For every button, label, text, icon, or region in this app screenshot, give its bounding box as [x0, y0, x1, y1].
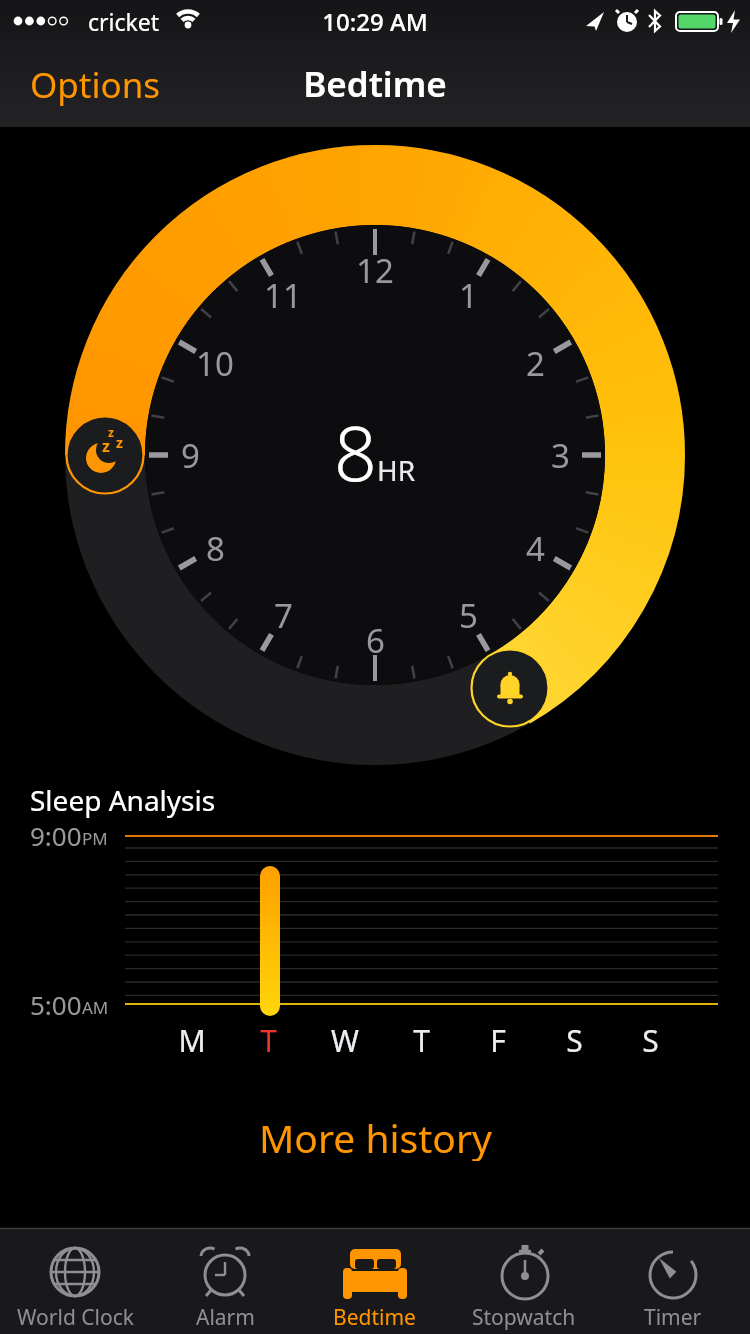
- staticText: 2: [526, 341, 545, 386]
- staticText: 8: [334, 401, 377, 503]
- staticText: PM: [82, 827, 108, 850]
- staticText: HR: [377, 451, 416, 489]
- staticText: 7: [274, 593, 293, 638]
- button[interactable]: Bedtime: [300, 1229, 448, 1334]
- staticText: 9: [181, 433, 200, 478]
- staticText: AM: [82, 996, 109, 1019]
- staticText: z: [116, 433, 123, 452]
- staticText: W: [331, 1020, 359, 1061]
- staticText: 8: [206, 526, 225, 571]
- staticText: Stopwatch: [472, 1303, 576, 1331]
- staticText: 6: [366, 618, 385, 663]
- staticText: Bedtime: [333, 1303, 416, 1331]
- staticText: cricket: [88, 6, 160, 37]
- staticText: World Clock: [17, 1303, 134, 1331]
- button[interactable]: [66, 416, 144, 494]
- button[interactable]: More history: [245, 1105, 506, 1167]
- staticText: T: [260, 1020, 277, 1061]
- staticText: 3: [551, 433, 570, 478]
- staticText: S: [566, 1020, 583, 1061]
- staticText: 11: [264, 273, 302, 318]
- staticText: Sleep Analysis: [30, 781, 216, 819]
- button[interactable]: Timer: [599, 1229, 747, 1334]
- button[interactable]: [471, 649, 549, 727]
- staticText: Timer: [644, 1303, 702, 1331]
- staticText: z: [102, 435, 110, 457]
- button[interactable]: Alarm: [151, 1229, 299, 1334]
- staticText: 4: [526, 526, 545, 571]
- staticText: S: [642, 1020, 659, 1061]
- staticText: 12: [356, 248, 394, 293]
- staticText: More history: [259, 1111, 492, 1161]
- staticText: 1: [459, 273, 478, 318]
- staticText: T: [413, 1020, 430, 1061]
- staticText: F: [490, 1020, 506, 1061]
- button[interactable]: World Clock: [1, 1229, 149, 1334]
- staticText: Alarm: [196, 1303, 255, 1331]
- button[interactable]: Stopwatch: [450, 1229, 598, 1334]
- staticText: 10:29 AM: [322, 5, 428, 38]
- staticText: Options: [30, 61, 161, 109]
- button[interactable]: Options: [18, 53, 173, 117]
- staticText: 5: [459, 593, 478, 638]
- staticText: M: [178, 1020, 206, 1061]
- staticText: 5:00: [30, 987, 82, 1022]
- staticText: 10: [196, 341, 234, 386]
- staticText: 9:00: [30, 818, 82, 853]
- staticText: Bedtime: [303, 60, 447, 108]
- staticText: z: [108, 424, 114, 440]
